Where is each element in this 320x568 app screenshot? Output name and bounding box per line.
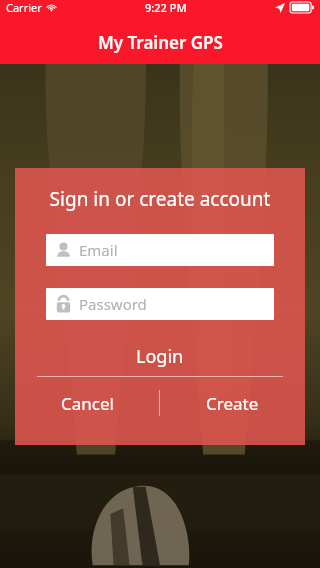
button[interactable]: Password (46, 288, 274, 320)
staticText: Login (136, 344, 184, 369)
staticText: Carrier (6, 0, 42, 15)
staticText: My Trainer GPS (98, 31, 223, 54)
staticText: Sign in or create account (15, 186, 305, 212)
button[interactable]: Cancel (15, 386, 159, 420)
staticText: Create (206, 392, 259, 415)
staticText: Cancel (61, 392, 114, 415)
button[interactable]: Email (46, 234, 274, 266)
staticText: 9:22 PM (145, 0, 187, 15)
staticText: Email (79, 240, 118, 260)
button[interactable]: Login (31, 340, 289, 372)
staticText: Password (79, 294, 147, 314)
button[interactable]: Create (160, 386, 305, 420)
